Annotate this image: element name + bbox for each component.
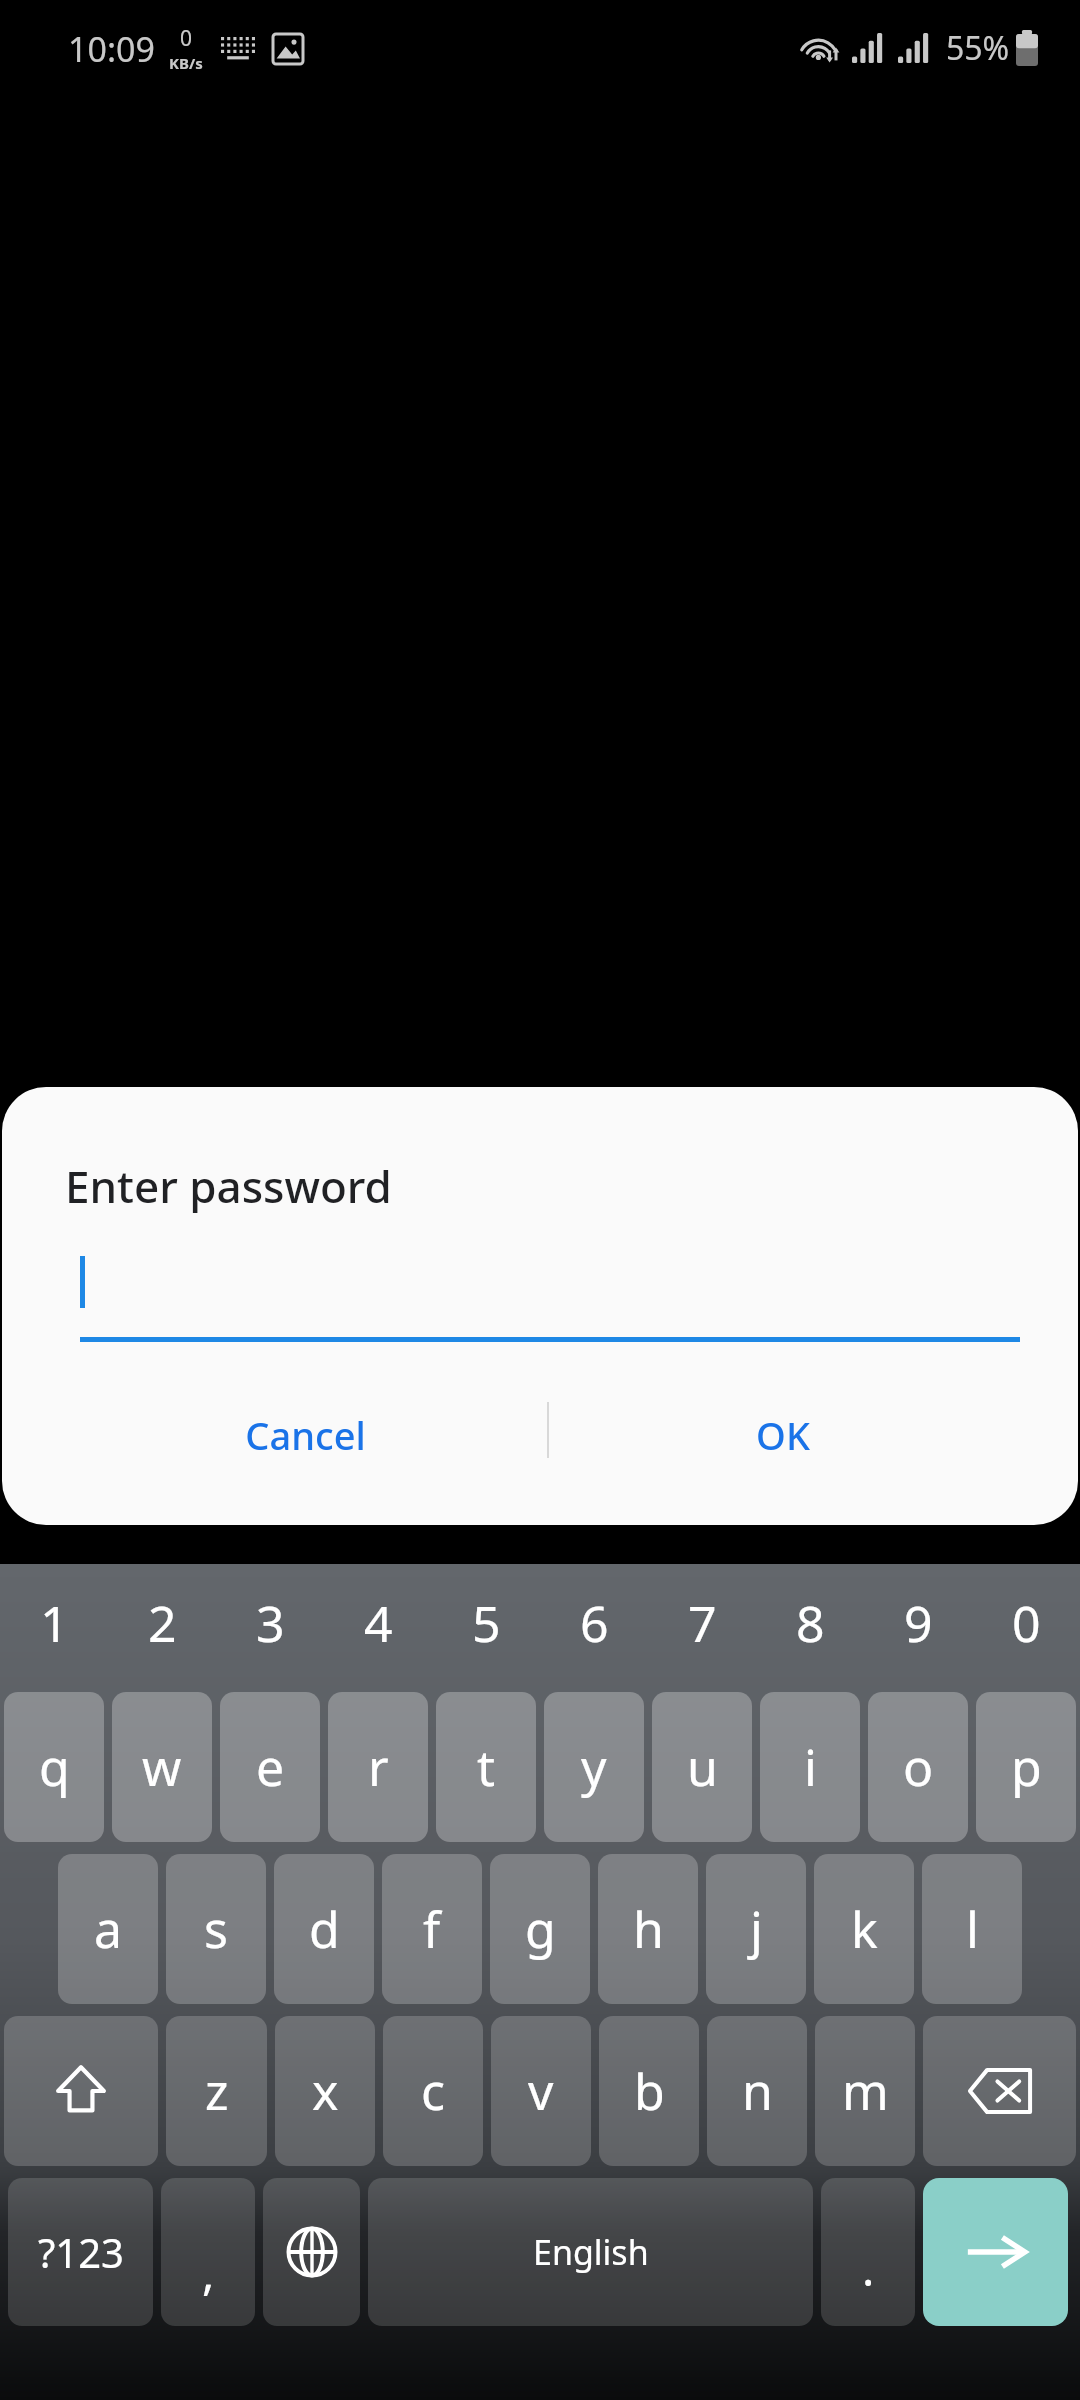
button[interactable]: o <box>868 1692 968 1842</box>
staticText: o <box>903 1733 934 1801</box>
button[interactable]: i <box>760 1692 860 1842</box>
button[interactable]: e <box>220 1692 320 1842</box>
button[interactable]: , <box>161 2178 255 2326</box>
staticText: a <box>94 1895 123 1963</box>
button[interactable]: 6 <box>540 1564 648 1681</box>
staticText: y <box>581 1733 607 1801</box>
staticText: KB/s <box>169 53 203 73</box>
staticText: OK <box>756 1409 810 1461</box>
button[interactable]: t <box>436 1692 536 1842</box>
button[interactable]: Shift <box>4 2016 158 2166</box>
button[interactable]: u <box>652 1692 752 1842</box>
button[interactable]: 2 <box>108 1564 216 1681</box>
staticText: , <box>202 2241 215 2304</box>
button[interactable]: j <box>706 1854 806 2004</box>
button[interactable]: r <box>328 1692 428 1842</box>
staticText: m <box>842 2057 889 2125</box>
staticText: n <box>742 2057 773 2125</box>
button[interactable]: 1 <box>0 1564 108 1681</box>
staticText: b <box>634 2057 665 2125</box>
button[interactable] <box>80 1250 1020 1342</box>
staticText: 4 <box>364 1589 393 1657</box>
button[interactable]: y <box>544 1692 644 1842</box>
button[interactable]: v <box>491 2016 591 2166</box>
staticText: 55% <box>946 26 1010 70</box>
staticText: 0 <box>1012 1589 1041 1657</box>
staticText: 1 <box>40 1589 69 1657</box>
staticText: 0 <box>180 24 193 53</box>
button[interactable]: a <box>58 1854 158 2004</box>
button[interactable]: x <box>275 2016 375 2166</box>
staticText: 10:09 <box>68 26 155 72</box>
staticText: 3 <box>256 1589 285 1657</box>
staticText: f <box>423 1895 441 1963</box>
button[interactable]: 8 <box>756 1564 864 1681</box>
staticText: e <box>256 1733 285 1801</box>
button[interactable]: n <box>707 2016 807 2166</box>
staticText: r <box>368 1733 389 1801</box>
button[interactable]: d <box>274 1854 374 2004</box>
button[interactable]: 0 <box>972 1564 1080 1681</box>
button[interactable]: b <box>599 2016 699 2166</box>
button[interactable]: Change keyboard language <box>263 2178 360 2326</box>
button[interactable]: OK <box>598 1392 968 1478</box>
staticText: 9 <box>904 1589 933 1657</box>
staticText: l <box>966 1895 979 1963</box>
staticText: k <box>851 1895 878 1963</box>
button[interactable]: 4 <box>324 1564 432 1681</box>
button[interactable]: s <box>166 1854 266 2004</box>
button[interactable]: 7 <box>648 1564 756 1681</box>
button[interactable]: g <box>490 1854 590 2004</box>
staticText: c <box>421 2057 445 2125</box>
button[interactable]: c <box>383 2016 483 2166</box>
staticText: ?123 <box>38 2225 124 2279</box>
staticText: q <box>39 1733 70 1801</box>
button[interactable]: l <box>922 1854 1022 2004</box>
staticText: Enter password <box>65 1156 392 1216</box>
button[interactable]: m <box>815 2016 915 2166</box>
staticText: 6 <box>580 1589 609 1657</box>
staticText: t <box>477 1733 496 1801</box>
staticText: w <box>142 1733 182 1801</box>
button[interactable]: q <box>4 1692 104 1842</box>
button[interactable]: 5 <box>432 1564 540 1681</box>
button[interactable]: Enter <box>923 2178 1068 2326</box>
staticText: 5 <box>472 1589 501 1657</box>
staticText: v <box>528 2057 554 2125</box>
staticText: p <box>1011 1733 1042 1801</box>
staticText: j <box>750 1895 763 1963</box>
staticText: z <box>205 2057 229 2125</box>
staticText: 8 <box>796 1589 825 1657</box>
button[interactable]: 9 <box>864 1564 972 1681</box>
staticText: h <box>633 1895 664 1963</box>
button[interactable]: w <box>112 1692 212 1842</box>
staticText: . <box>862 2237 875 2300</box>
staticText: d <box>309 1895 340 1963</box>
button[interactable]: Space <box>368 2178 813 2326</box>
staticText: g <box>525 1895 556 1963</box>
button[interactable]: k <box>814 1854 914 2004</box>
button[interactable]: Cancel <box>120 1392 490 1478</box>
staticText: x <box>312 2057 339 2125</box>
staticText: i <box>804 1733 817 1801</box>
staticText: Cancel <box>245 1409 366 1461</box>
staticText: 2 <box>148 1589 177 1657</box>
staticText: u <box>687 1733 718 1801</box>
button[interactable]: Backspace <box>923 2016 1076 2166</box>
staticText: English <box>533 2229 649 2275</box>
button[interactable]: 3 <box>216 1564 324 1681</box>
button[interactable]: . <box>821 2178 915 2326</box>
button[interactable]: f <box>382 1854 482 2004</box>
staticText: s <box>204 1895 228 1963</box>
button[interactable]: p <box>976 1692 1076 1842</box>
button[interactable]: z <box>166 2016 267 2166</box>
button[interactable]: ?123 <box>8 2178 153 2326</box>
staticText: 7 <box>688 1589 717 1657</box>
button[interactable]: h <box>598 1854 698 2004</box>
